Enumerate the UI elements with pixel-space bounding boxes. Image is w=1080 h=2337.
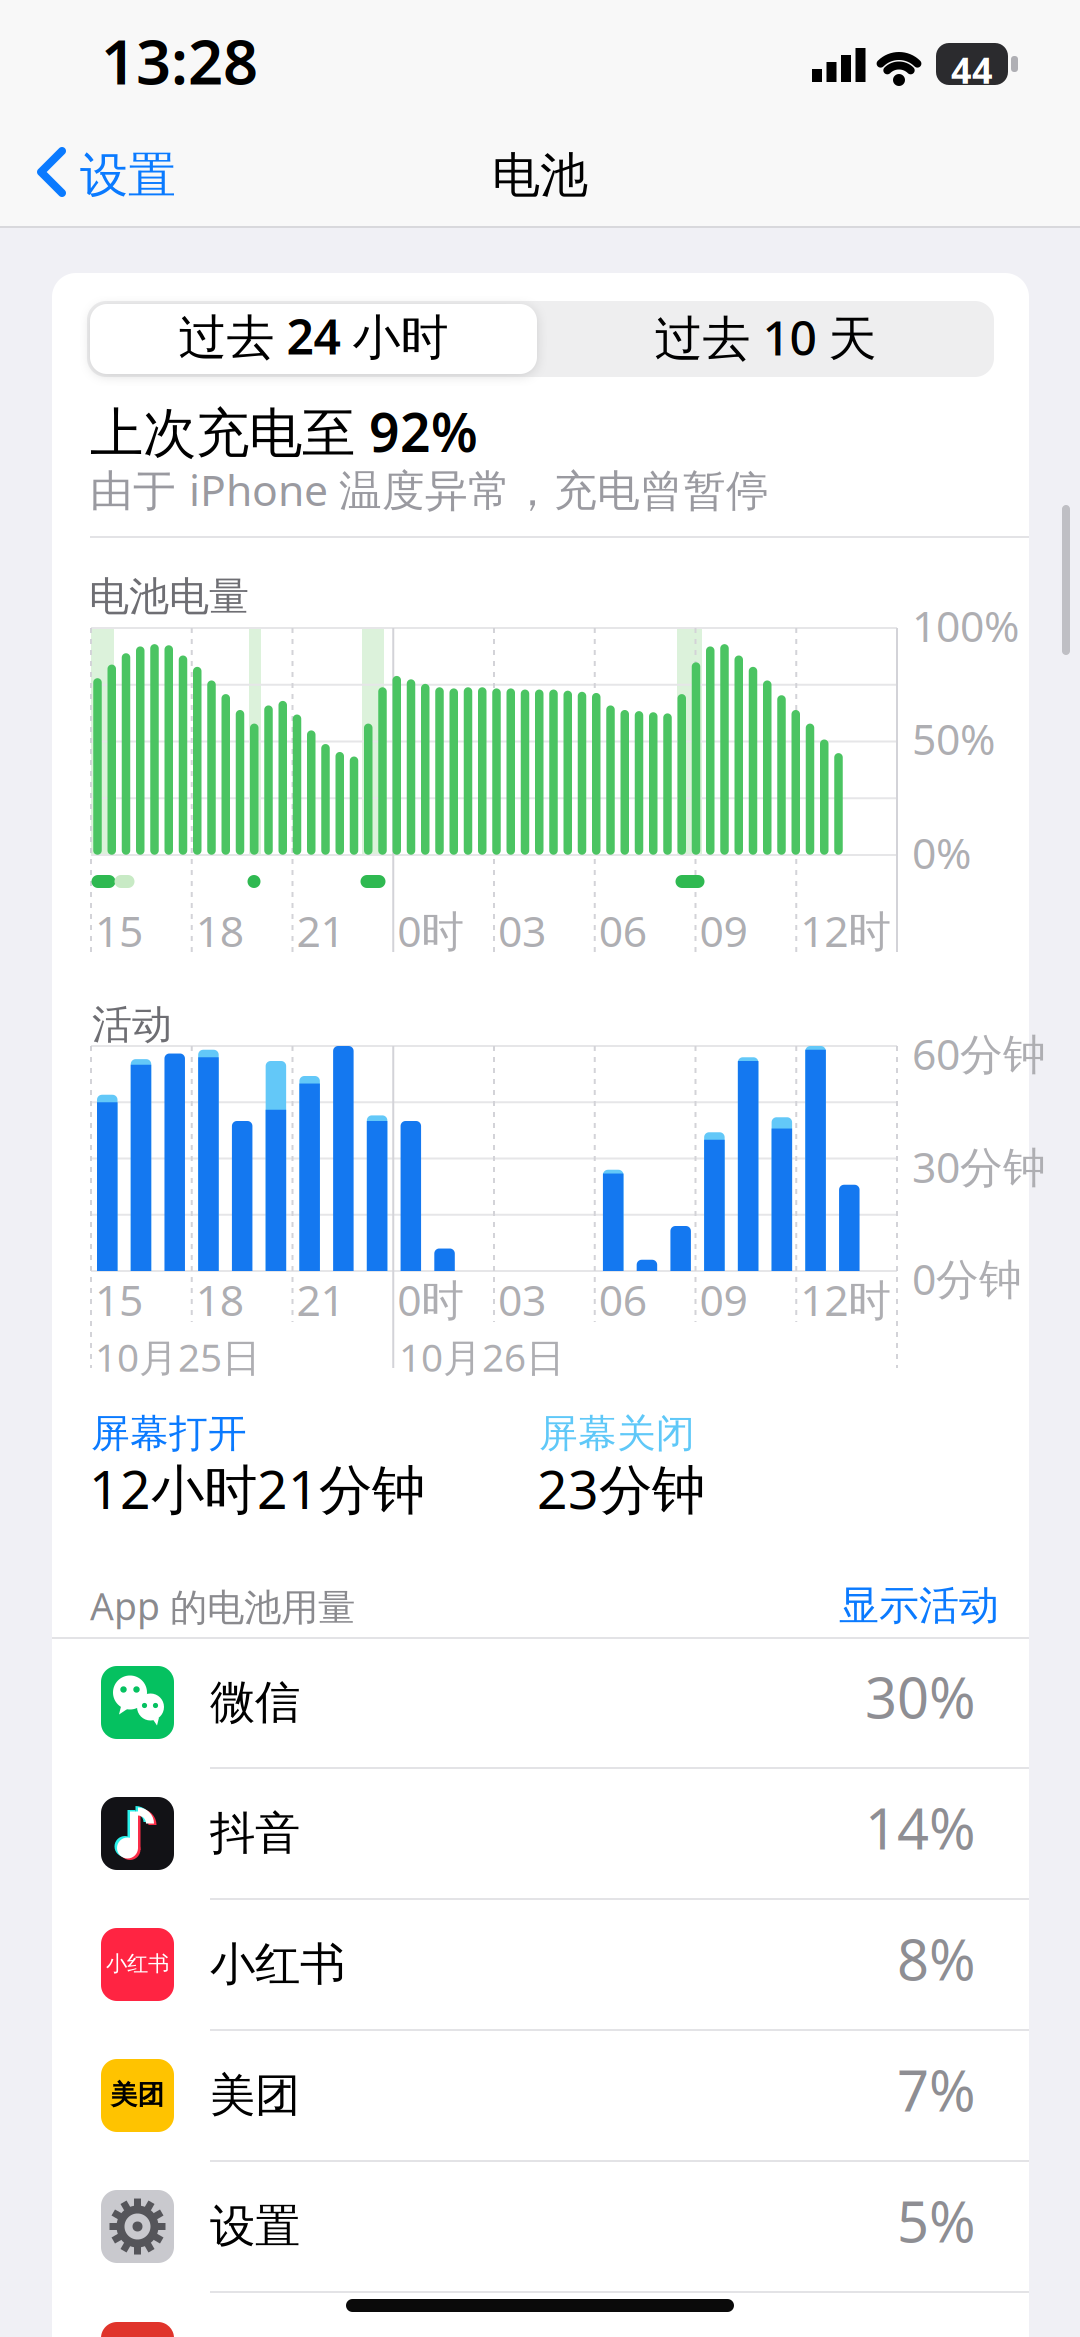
staticText: 5%	[897, 2183, 976, 2258]
staticText: 7%	[897, 2052, 976, 2127]
staticText: 13:28	[101, 20, 258, 101]
staticText: 设置	[80, 146, 176, 205]
staticText: 0%	[912, 824, 971, 881]
button[interactable]: 美团	[52, 2030, 1029, 2161]
staticText: 0分钟	[912, 1250, 1022, 1307]
staticText: 活动	[92, 1000, 172, 1049]
button[interactable]: 设置	[30, 138, 190, 208]
staticText: 10月26日	[399, 1331, 565, 1382]
staticText: 过去 24 小时	[178, 304, 448, 368]
staticText: 21	[296, 902, 344, 959]
staticText: 18	[196, 902, 244, 959]
staticText: 小红书	[210, 1936, 345, 1992]
staticText: 美团	[110, 2078, 164, 2111]
button[interactable]: 微信	[52, 1637, 1029, 1768]
staticText: 抖音	[210, 1805, 300, 1861]
staticText: 小红书	[106, 1950, 169, 1977]
staticText: 微信	[210, 1674, 300, 1730]
staticText: 23分钟	[537, 1453, 705, 1524]
staticText: 18	[196, 1271, 244, 1328]
button[interactable]: 小红书	[52, 1899, 1029, 2030]
staticText: 21	[296, 1271, 344, 1328]
staticText: 过去 10 天	[654, 305, 876, 369]
staticText: 15	[95, 1271, 143, 1328]
staticText: 30%	[865, 1659, 976, 1734]
staticText: 显示活动	[839, 1581, 999, 1630]
staticText: App 的电池用量	[90, 1581, 355, 1631]
staticText: 0时	[397, 902, 464, 959]
staticText: 06	[599, 902, 647, 959]
staticText: 0时	[397, 1271, 464, 1328]
staticText: 60分钟	[912, 1025, 1046, 1082]
staticText: 14%	[865, 1790, 976, 1865]
button[interactable]	[90, 304, 537, 374]
staticText: 06	[599, 1271, 647, 1328]
staticText: 美团	[210, 2067, 300, 2123]
staticText: 44	[951, 46, 993, 94]
staticText: 8%	[897, 1921, 976, 1996]
staticText: 15	[95, 902, 143, 959]
staticText: 10月25日	[95, 1331, 261, 1382]
staticText: 电池	[492, 146, 588, 205]
button[interactable]: 设置	[52, 2161, 1029, 2292]
staticText: 30分钟	[912, 1138, 1046, 1195]
button[interactable]: 显示活动	[699, 1581, 999, 1630]
button[interactable]: 过去 10 天	[537, 299, 994, 375]
staticText: 03	[498, 902, 546, 959]
staticText: 09	[699, 902, 747, 959]
staticText: 12时	[800, 1271, 891, 1328]
staticText: 由于 iPhone 温度异常，充电曾暂停	[90, 461, 769, 518]
staticText: 12小时21分钟	[89, 1453, 425, 1524]
staticText: 电池电量	[89, 572, 249, 621]
staticText: 03	[498, 1271, 546, 1328]
staticText: 设置	[210, 2198, 300, 2254]
staticText: 屏幕关闭	[539, 1410, 695, 1457]
staticText: 屏幕打开	[91, 1410, 247, 1457]
staticText: 09	[699, 1271, 747, 1328]
button[interactable]: 抖音	[52, 1768, 1029, 1899]
staticText: 上次充电至 92%	[90, 396, 478, 467]
staticText: 12时	[800, 902, 891, 959]
staticText: 100%	[912, 597, 1019, 654]
staticText: 50%	[912, 710, 995, 767]
